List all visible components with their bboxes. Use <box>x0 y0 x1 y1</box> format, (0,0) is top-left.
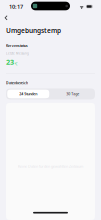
staticText: Datenbereich <box>6 80 28 85</box>
button[interactable]: Back <box>0 13 13 23</box>
staticText: Umgebungstemp <box>6 26 61 35</box>
staticText: °C <box>14 62 17 66</box>
staticText: Keine Daten für den gewählten Zeitraum <box>18 164 83 169</box>
button[interactable]: 24 Stunden <box>6 88 50 99</box>
button[interactable]: 30 Tage <box>50 88 95 99</box>
staticText: Letzte Messung <box>6 51 29 55</box>
staticText: 30 Tage <box>66 91 79 96</box>
staticText: 10:17 <box>9 3 23 10</box>
staticText: Kerzenstatus <box>6 43 28 48</box>
staticText: 24 Stunden <box>19 91 37 96</box>
staticText: 23 <box>6 57 14 67</box>
